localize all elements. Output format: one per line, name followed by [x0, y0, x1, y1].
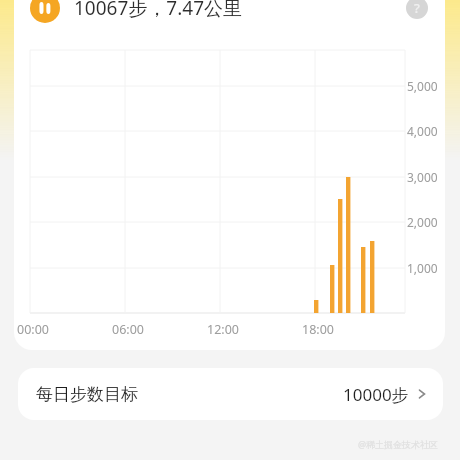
- staticText: 3,000: [407, 169, 438, 185]
- staticText: 06:00: [112, 321, 144, 338]
- button[interactable]: 每日步数目标: [18, 368, 443, 420]
- staticText: @稀土掘金技术社区: [358, 438, 439, 450]
- staticText: 00:00: [17, 321, 49, 338]
- staticText: 2,000: [407, 214, 438, 230]
- staticText: 5,000: [407, 78, 438, 94]
- staticText: 10000步: [343, 383, 409, 406]
- staticText: 1,000: [407, 260, 438, 276]
- staticText: ?: [414, 0, 420, 17]
- staticText: 12:00: [207, 321, 239, 338]
- staticText: 10067步，7.47公里: [74, 0, 243, 21]
- staticText: 18:00: [302, 321, 334, 338]
- staticText: 每日步数目标: [36, 384, 138, 405]
- button[interactable]: 10067步，7.47公里: [14, 0, 445, 34]
- button[interactable]: Help: [406, 0, 428, 19]
- staticText: 4,000: [407, 123, 438, 139]
